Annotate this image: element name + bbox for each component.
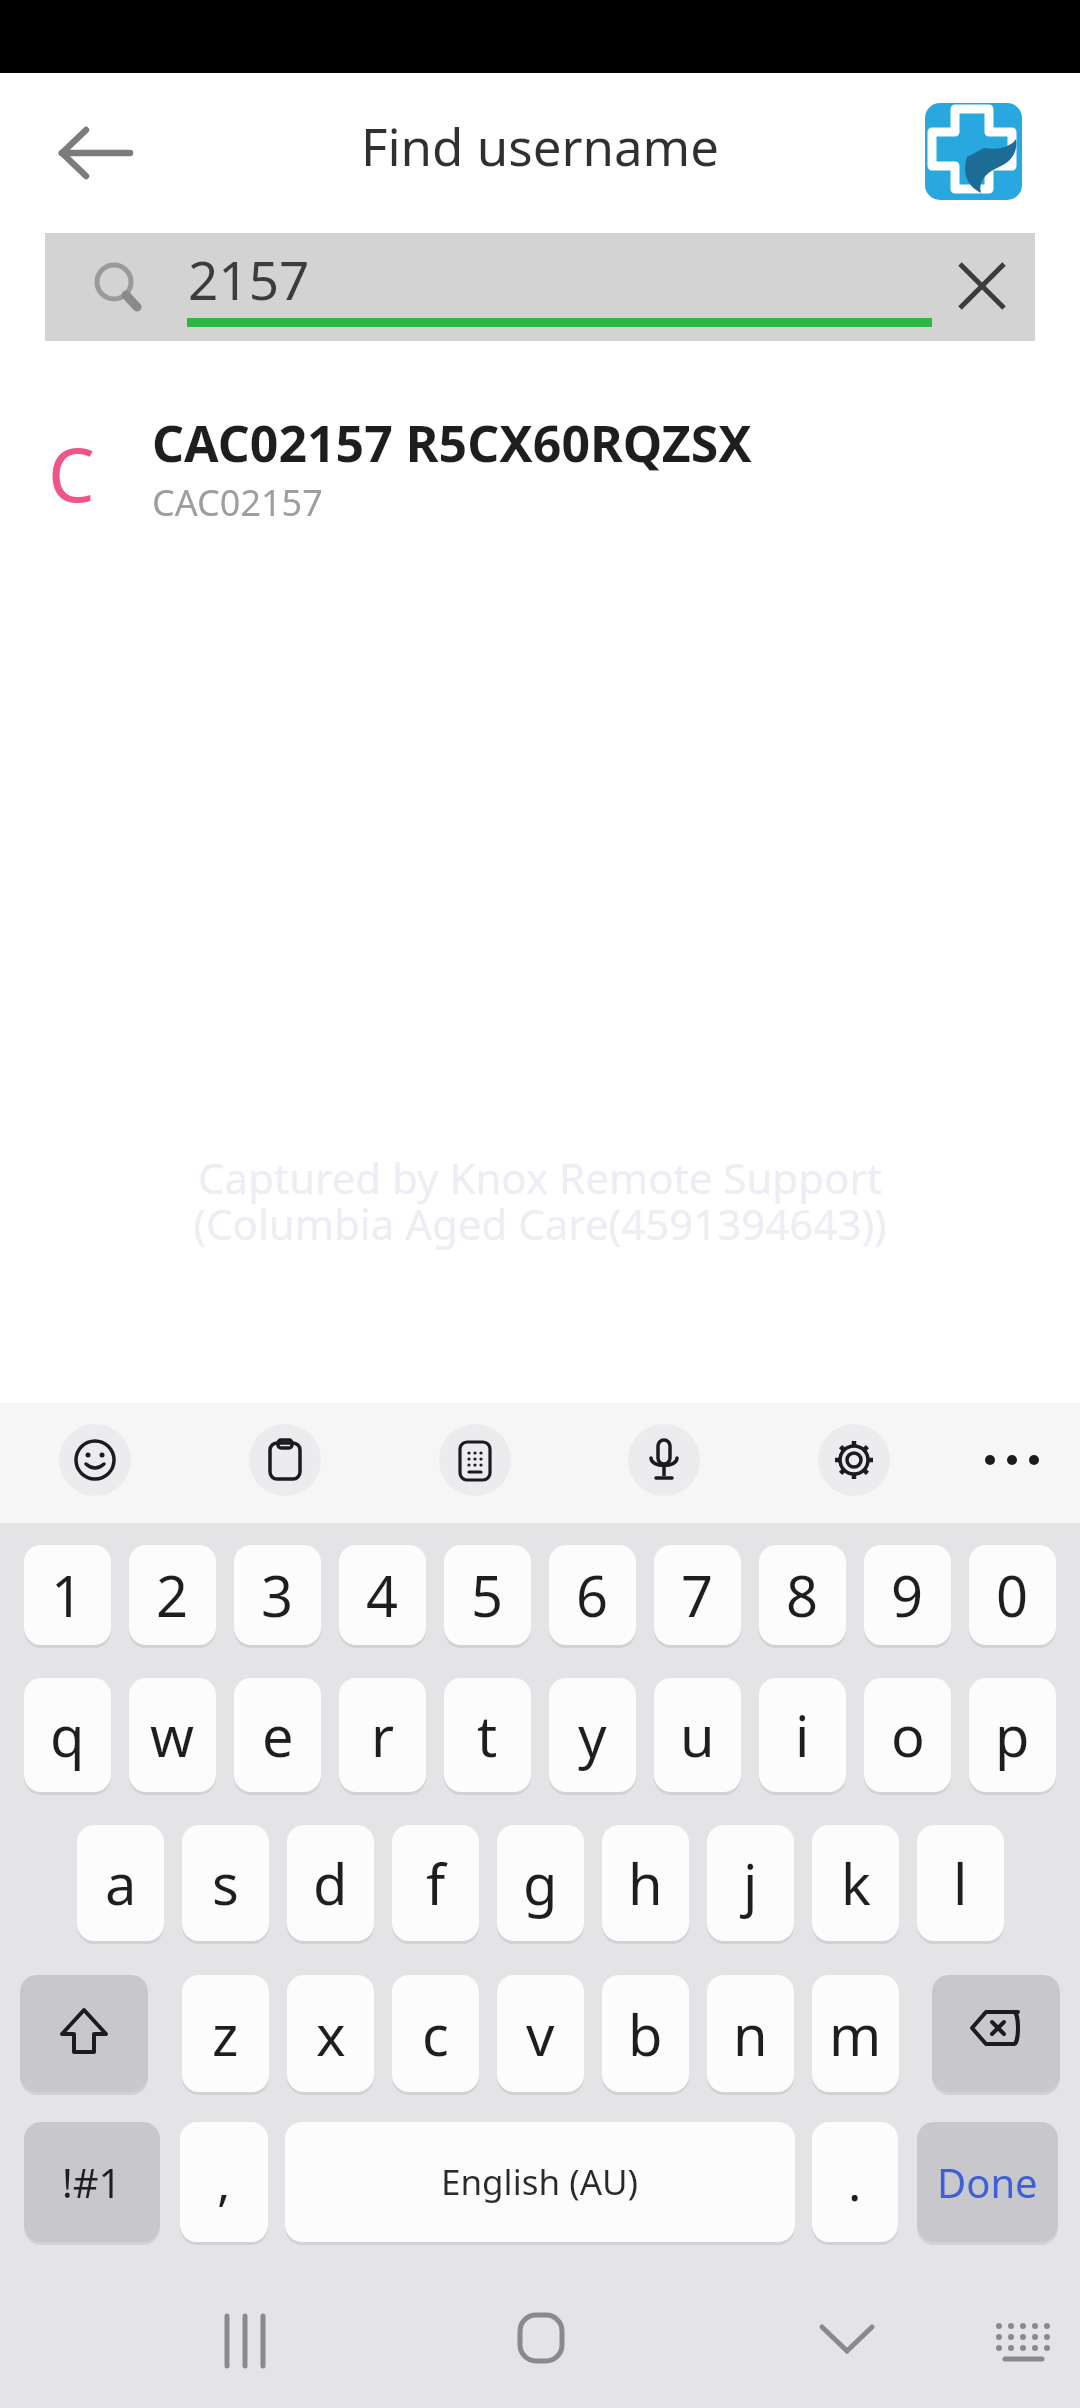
button[interactable]: k xyxy=(812,1825,899,1941)
staticText: d xyxy=(313,1845,348,1921)
button[interactable]: q xyxy=(24,1678,111,1792)
staticText: f xyxy=(426,1845,446,1921)
button[interactable] xyxy=(59,1424,131,1496)
staticText: 8 xyxy=(786,1557,819,1633)
button[interactable]: , xyxy=(180,2122,268,2242)
staticText: !#1 xyxy=(62,2155,122,2209)
staticText: , xyxy=(217,2148,231,2216)
button[interactable]: g xyxy=(497,1825,584,1941)
button[interactable]: p xyxy=(969,1678,1056,1792)
staticText: s xyxy=(212,1845,239,1921)
staticText: r xyxy=(371,1697,395,1773)
button[interactable]: h xyxy=(602,1825,689,1941)
button[interactable] xyxy=(224,2316,268,2366)
staticText: 2 xyxy=(156,1557,189,1633)
button[interactable]: r xyxy=(339,1678,426,1792)
button[interactable]: j xyxy=(707,1825,794,1941)
button[interactable]: 2157 xyxy=(45,233,1035,341)
staticText: Captured by Knox Remote Support xyxy=(0,1149,1080,1206)
button[interactable]: 7 xyxy=(654,1545,741,1645)
button[interactable] xyxy=(822,2325,872,2353)
staticText: Find username xyxy=(0,111,1080,180)
button[interactable] xyxy=(818,1424,890,1496)
button[interactable] xyxy=(984,1454,1044,1466)
button[interactable]: a xyxy=(77,1825,164,1941)
button[interactable] xyxy=(249,1424,321,1496)
button[interactable]: v xyxy=(497,1975,584,2092)
staticText: v xyxy=(526,1996,555,2072)
staticText: 2157 xyxy=(188,243,310,315)
staticText: g xyxy=(523,1845,558,1921)
button[interactable]: f xyxy=(392,1825,479,1941)
button[interactable]: d xyxy=(287,1825,374,1941)
button[interactable]: u xyxy=(654,1678,741,1792)
button[interactable]: 3 xyxy=(234,1545,321,1645)
button[interactable]: i xyxy=(759,1678,846,1792)
staticText: 1 xyxy=(51,1557,84,1633)
staticText: 9 xyxy=(891,1557,924,1633)
staticText: y xyxy=(578,1697,607,1773)
button[interactable]: x xyxy=(287,1975,374,2092)
button[interactable]: 6 xyxy=(549,1545,636,1645)
button[interactable] xyxy=(439,1424,511,1496)
staticText: n xyxy=(733,1996,768,2072)
button[interactable]: Done xyxy=(917,2122,1058,2242)
staticText: l xyxy=(953,1845,968,1921)
button[interactable] xyxy=(20,1975,148,2092)
button[interactable]: 9 xyxy=(864,1545,951,1645)
button[interactable]: 2 xyxy=(129,1545,216,1645)
button[interactable] xyxy=(628,1424,700,1496)
staticText: x xyxy=(316,1996,346,2072)
staticText: Done xyxy=(937,2155,1038,2209)
button[interactable]: n xyxy=(707,1975,794,2092)
button[interactable]: z xyxy=(182,1975,269,2092)
button[interactable]: !#1 xyxy=(24,2122,160,2242)
button[interactable]: y xyxy=(549,1678,636,1792)
staticText: u xyxy=(680,1697,715,1773)
button[interactable] xyxy=(925,103,1022,200)
staticText: o xyxy=(891,1697,925,1773)
staticText: C xyxy=(48,423,95,524)
staticText: q xyxy=(50,1697,85,1773)
button[interactable]: l xyxy=(917,1825,1004,1941)
staticText: i xyxy=(795,1697,810,1773)
button[interactable]: w xyxy=(129,1678,216,1792)
button[interactable]: t xyxy=(444,1678,531,1792)
button[interactable]: b xyxy=(602,1975,689,2092)
button[interactable]: c xyxy=(392,1975,479,2092)
staticText: t xyxy=(477,1697,498,1773)
staticText: b xyxy=(628,1996,663,2072)
button[interactable] xyxy=(959,263,1005,309)
button[interactable]: C xyxy=(0,403,1080,543)
button[interactable]: o xyxy=(864,1678,951,1792)
staticText: p xyxy=(995,1697,1030,1773)
button[interactable]: 4 xyxy=(339,1545,426,1645)
button[interactable]: s xyxy=(182,1825,269,1941)
button[interactable]: 8 xyxy=(759,1545,846,1645)
staticText: a xyxy=(105,1845,137,1921)
staticText: j xyxy=(743,1845,758,1921)
button[interactable] xyxy=(52,122,136,184)
staticText: CAC02157 R5CX60RQZSX xyxy=(152,409,752,477)
staticText: 0 xyxy=(996,1557,1029,1633)
button[interactable]: 1 xyxy=(24,1545,111,1645)
staticText: w xyxy=(150,1697,195,1773)
button[interactable]: m xyxy=(812,1975,899,2092)
button[interactable]: 0 xyxy=(969,1545,1056,1645)
staticText: k xyxy=(841,1845,871,1921)
button[interactable] xyxy=(932,1975,1060,2092)
button[interactable]: 5 xyxy=(444,1545,531,1645)
staticText: z xyxy=(212,1996,239,2072)
button[interactable] xyxy=(520,2315,564,2363)
staticText: c xyxy=(422,1996,449,2072)
staticText: 3 xyxy=(261,1557,294,1633)
button[interactable]: e xyxy=(234,1678,321,1792)
staticText: English (AU) xyxy=(441,2158,639,2206)
staticText: 6 xyxy=(576,1557,609,1633)
staticText: 5 xyxy=(471,1557,504,1633)
button[interactable]: . xyxy=(812,2122,898,2242)
button[interactable] xyxy=(993,2320,1054,2364)
staticText: (Columbia Aged Care(4591394643)) xyxy=(0,1195,1080,1252)
staticText: CAC02157 xyxy=(152,478,323,527)
button[interactable]: English (AU) xyxy=(285,2122,795,2242)
